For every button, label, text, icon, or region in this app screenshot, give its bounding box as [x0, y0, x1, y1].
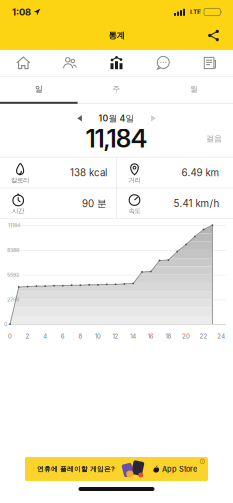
staticText: 1:08 — [12, 6, 31, 18]
staticText: 칼로리 — [11, 176, 29, 184]
staticText: 10월 4일 — [98, 113, 134, 124]
staticText: 2796 — [7, 296, 19, 303]
staticText: 22 — [200, 333, 208, 340]
staticText: 시간 — [12, 207, 24, 215]
staticText: 2 — [26, 333, 30, 340]
staticText: 5592 — [7, 271, 19, 278]
button[interactable]: 주 — [78, 78, 155, 100]
staticText: 걸음 — [206, 133, 222, 144]
staticText: 통계 — [108, 30, 124, 41]
staticText: 월 — [190, 84, 198, 94]
staticText: 10 — [95, 333, 101, 340]
staticText: 속도 — [128, 207, 140, 215]
staticText: LTE — [190, 8, 201, 16]
button[interactable]: 다음 날짜 — [150, 114, 156, 122]
staticText: 138 kcal — [70, 167, 107, 178]
staticText: 일 — [35, 84, 43, 94]
staticText: 12 — [113, 333, 119, 340]
staticText: 18 — [165, 333, 171, 340]
button[interactable]: 채팅 — [140, 50, 186, 76]
button[interactable]: 이전 날짜 — [76, 114, 82, 122]
staticText: 거리 — [128, 176, 140, 184]
staticText: 20 — [182, 333, 190, 340]
staticText: 24 — [217, 333, 225, 340]
staticText: 16 — [148, 333, 154, 340]
button[interactable]: 월 — [155, 78, 233, 100]
staticText: 0 — [4, 321, 7, 327]
staticText: 8 — [78, 333, 82, 340]
staticText: 6 — [61, 333, 65, 340]
button[interactable]: 친구 — [47, 50, 93, 76]
staticText: 4 — [43, 333, 47, 340]
button[interactable]: 통계 — [93, 50, 140, 76]
button[interactable]: 일 — [0, 78, 78, 100]
staticText: App Store — [162, 465, 197, 473]
staticText: 0 — [8, 333, 12, 340]
button[interactable]: 홈 — [0, 50, 47, 76]
staticText: 11184 — [8, 222, 20, 228]
button[interactable]: 뉴스 — [186, 50, 233, 76]
staticText: 6.49 km — [181, 167, 219, 178]
staticText: 8388 — [7, 247, 19, 253]
staticText: 연휴에 플레이할 게임은? — [37, 465, 115, 473]
button[interactable]: Share — [207, 29, 233, 42]
staticText: 주 — [112, 84, 120, 94]
button[interactable]: 광고 — [25, 457, 208, 481]
staticText: 5.41 km/h — [173, 197, 219, 209]
staticText: 11,184 — [86, 123, 147, 154]
staticText: 14 — [130, 333, 136, 340]
staticText: 90 분 — [82, 197, 107, 210]
